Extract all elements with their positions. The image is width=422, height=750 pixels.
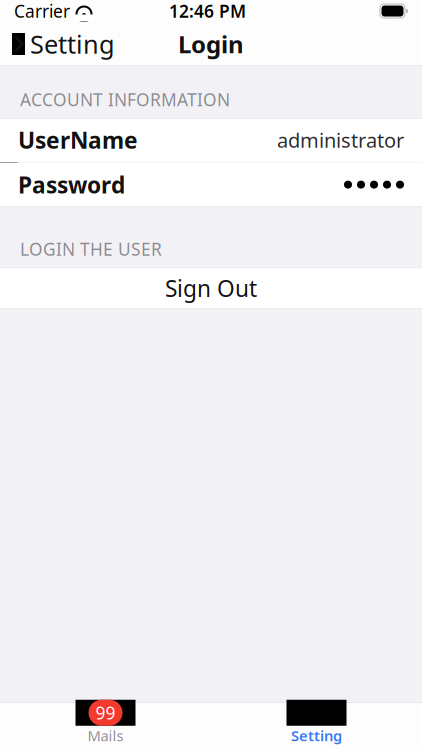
button[interactable]: Password bbox=[0, 163, 422, 207]
staticText: LOGIN THE USER bbox=[20, 238, 162, 261]
staticText: ACCOUNT INFORMATION bbox=[20, 88, 230, 111]
staticText: Login bbox=[178, 28, 244, 60]
staticText: Password bbox=[18, 170, 125, 200]
button[interactable]: UserName bbox=[0, 118, 422, 163]
button[interactable]: Sign Out bbox=[0, 268, 422, 309]
staticText: Setting bbox=[291, 726, 342, 745]
staticText: Carrier bbox=[14, 0, 70, 22]
button[interactable]: 99 bbox=[0, 703, 211, 750]
button[interactable]: Setting bbox=[211, 703, 422, 750]
staticText: Mails bbox=[87, 726, 123, 745]
staticText: Setting bbox=[30, 27, 115, 61]
staticText: 99 bbox=[95, 701, 115, 724]
button[interactable]: Setting bbox=[0, 21, 115, 67]
staticText: 12:46 PM bbox=[169, 0, 246, 22]
staticText: administrator bbox=[277, 127, 404, 153]
staticText: Sign Out bbox=[165, 273, 257, 303]
staticText: UserName bbox=[18, 125, 138, 155]
